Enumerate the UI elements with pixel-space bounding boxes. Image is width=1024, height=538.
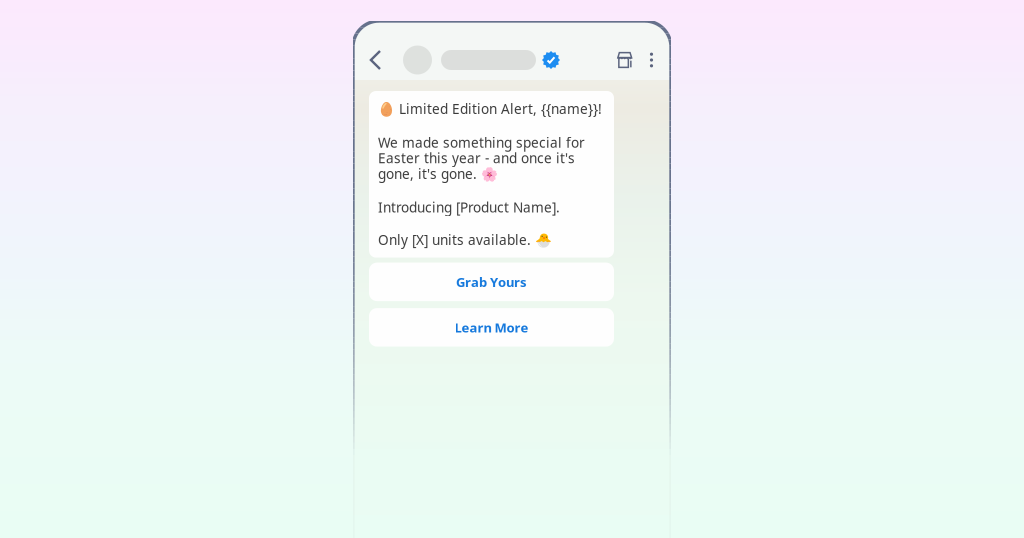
staticText: Introducing [Product Name]. (378, 198, 560, 216)
staticText: We made something special for (378, 133, 585, 152)
staticText: 🥚 Limited Edition Alert, {{name}}! (378, 99, 602, 118)
staticText: Grab Yours (456, 273, 527, 291)
button[interactable]: Back (361, 41, 390, 79)
button[interactable]: Grab Yours (369, 263, 614, 301)
staticText: gone, it's gone. 🌸 (378, 164, 498, 183)
button[interactable]: Learn More (369, 308, 614, 347)
button[interactable]: Contact (403, 41, 560, 79)
button[interactable]: Catalog (612, 41, 638, 79)
staticText: Learn More (454, 318, 528, 336)
staticText: Only [X] units available. 🐣 (378, 230, 552, 249)
button[interactable]: More options (643, 41, 660, 79)
staticText: Easter this year - and once it's (378, 149, 575, 167)
